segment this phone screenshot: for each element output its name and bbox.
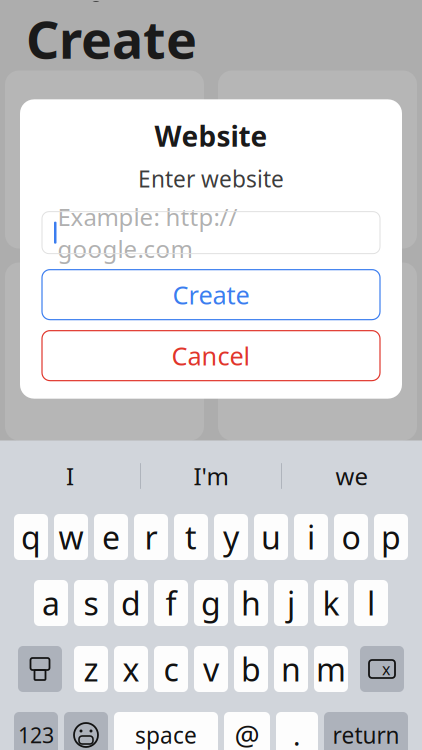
button[interactable]: e — [94, 514, 128, 560]
staticText: we — [335, 460, 368, 492]
button[interactable]: I'm — [141, 450, 281, 502]
staticText: b — [241, 648, 261, 690]
staticText: i — [307, 516, 315, 558]
staticText: return — [332, 720, 399, 750]
button[interactable]: g — [194, 580, 228, 626]
staticText: space — [135, 720, 197, 750]
button[interactable]: o — [334, 514, 368, 560]
staticText: g — [201, 582, 221, 624]
button[interactable]: s — [74, 580, 108, 626]
button[interactable]: p — [374, 514, 408, 560]
button[interactable]: . — [276, 712, 318, 750]
staticText: . — [293, 716, 301, 750]
staticText: v — [203, 648, 219, 690]
staticText: Create — [172, 278, 249, 311]
staticText: l — [367, 582, 375, 624]
staticText: n — [281, 648, 301, 690]
button[interactable]: n — [274, 646, 308, 692]
staticText: I'm — [193, 460, 228, 492]
staticText: r — [144, 516, 157, 558]
staticText: o — [341, 516, 360, 558]
button[interactable]: 123 — [14, 712, 58, 750]
button[interactable]: v — [194, 646, 228, 692]
staticText: s — [83, 582, 98, 624]
staticText: Website — [154, 117, 267, 155]
staticText: Enter website — [138, 163, 284, 194]
staticText: Cancel — [171, 339, 250, 372]
staticText: e — [102, 516, 120, 558]
staticText: j — [287, 582, 295, 624]
button[interactable]: w — [54, 514, 88, 560]
button[interactable]: I — [0, 450, 140, 502]
staticText: h — [241, 582, 261, 624]
button[interactable]: x — [114, 646, 148, 692]
button[interactable]: f — [154, 580, 188, 626]
button[interactable]: d — [114, 580, 148, 626]
button[interactable]: Emoji — [64, 712, 108, 750]
button[interactable]: m — [314, 646, 348, 692]
staticText: Create — [26, 4, 197, 73]
button[interactable]: @ — [224, 712, 270, 750]
button[interactable]: c — [154, 646, 188, 692]
button[interactable]: u — [254, 514, 288, 560]
button[interactable]: we — [282, 450, 422, 502]
button[interactable]: k — [314, 580, 348, 626]
button[interactable]: j — [274, 580, 308, 626]
button[interactable]: Shift — [18, 646, 62, 692]
button[interactable]: i — [294, 514, 328, 560]
staticText: I — [66, 460, 74, 492]
staticText: u — [261, 516, 281, 558]
button[interactable]: r — [134, 514, 168, 560]
staticText: x — [382, 658, 390, 680]
staticText: y — [223, 516, 239, 558]
button[interactable]: y — [214, 514, 248, 560]
button[interactable]: a — [34, 580, 68, 626]
staticText: z — [83, 648, 98, 690]
button[interactable]: Delete — [360, 646, 404, 692]
staticText: f — [165, 582, 176, 624]
staticText: 123 — [18, 721, 54, 749]
button[interactable]: z — [74, 646, 108, 692]
button[interactable]: q — [14, 514, 48, 560]
button[interactable]: space — [114, 712, 218, 750]
staticText: c — [163, 648, 178, 690]
button[interactable]: l — [354, 580, 388, 626]
staticText: k — [322, 582, 339, 624]
staticText: q — [21, 516, 41, 558]
staticText: a — [42, 582, 60, 624]
staticText: d — [121, 582, 141, 624]
button[interactable]: b — [234, 646, 268, 692]
staticText: t — [185, 516, 197, 558]
staticText: x — [122, 648, 139, 690]
staticText: Example: http://google.com — [57, 201, 237, 264]
staticText: w — [58, 516, 83, 558]
staticText: p — [381, 516, 401, 558]
button[interactable]: Create — [42, 270, 380, 320]
staticText: m — [316, 648, 346, 690]
button[interactable]: h — [234, 580, 268, 626]
button[interactable]: Cancel — [42, 331, 380, 381]
button[interactable]: return — [324, 712, 408, 750]
staticText: @ — [234, 716, 259, 750]
button[interactable]: t — [174, 514, 208, 560]
